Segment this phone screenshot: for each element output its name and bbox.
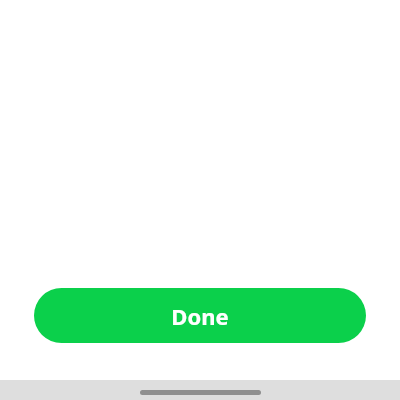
button[interactable]: Done	[34, 288, 366, 343]
staticText: Done	[171, 301, 229, 331]
